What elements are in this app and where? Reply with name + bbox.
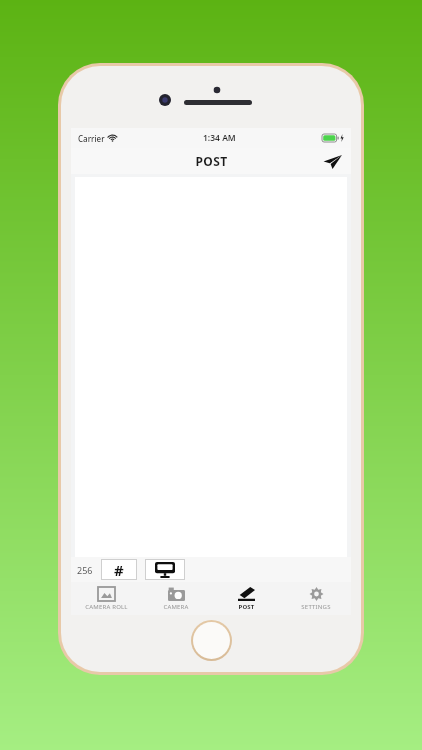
button[interactable]: Home: [191, 620, 232, 661]
staticText: POST: [238, 603, 255, 611]
button[interactable]: Send post: [319, 148, 345, 174]
button[interactable]: Preview on monitor: [145, 559, 185, 580]
button[interactable]: POST: [211, 582, 281, 615]
staticText: 1:34 AM: [203, 132, 236, 144]
staticText: SETTINGS: [301, 603, 331, 611]
staticText: 256: [77, 564, 93, 576]
staticText: CAMERA: [163, 603, 189, 611]
staticText: #: [114, 560, 124, 580]
button[interactable]: CAMERA ROLL: [71, 582, 141, 615]
staticText: Carrier: [78, 133, 105, 144]
staticText: POST: [195, 153, 228, 169]
staticText: CAMERA ROLL: [85, 603, 128, 611]
button[interactable]: CAMERA: [141, 582, 211, 615]
button[interactable]: SETTINGS: [281, 582, 351, 615]
button[interactable]: Hashtags: [101, 559, 137, 580]
